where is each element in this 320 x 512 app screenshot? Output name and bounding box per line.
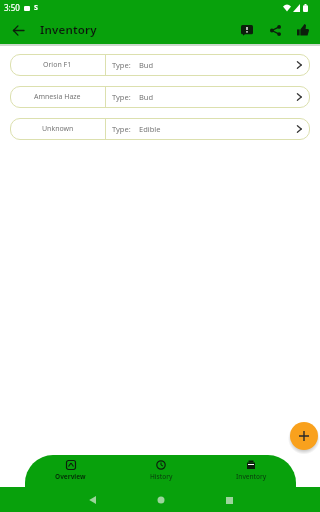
staticText: Unknown <box>42 124 74 134</box>
staticText: History <box>150 472 173 481</box>
button[interactable] <box>264 19 286 41</box>
button[interactable]: Overview <box>25 455 116 487</box>
staticText: Inventory <box>236 472 267 481</box>
staticText: Overview <box>55 472 86 481</box>
button[interactable] <box>88 496 96 504</box>
staticText: Type: <box>112 124 131 134</box>
button[interactable] <box>292 19 314 41</box>
button[interactable]: Amnesia Haze <box>10 86 310 108</box>
staticText: Bud <box>139 92 154 102</box>
button[interactable]: Unknown <box>10 118 310 140</box>
button[interactable] <box>157 496 165 504</box>
button[interactable] <box>6 18 30 42</box>
staticText: 3:50 <box>4 2 20 13</box>
button[interactable]: Inventory <box>206 455 296 487</box>
staticText: Inventory <box>40 22 97 38</box>
staticText: Type: <box>112 60 131 70</box>
staticText: Bud <box>139 60 154 70</box>
button[interactable]: Orion F1 <box>10 54 310 76</box>
staticText: Type: <box>112 92 131 102</box>
button[interactable] <box>290 422 318 450</box>
staticText: Orion F1 <box>43 60 72 70</box>
staticText: Amnesia Haze <box>34 92 81 102</box>
button[interactable] <box>236 19 258 41</box>
button[interactable]: History <box>116 455 206 487</box>
staticText: Edible <box>139 124 161 134</box>
staticText: S <box>34 3 38 13</box>
